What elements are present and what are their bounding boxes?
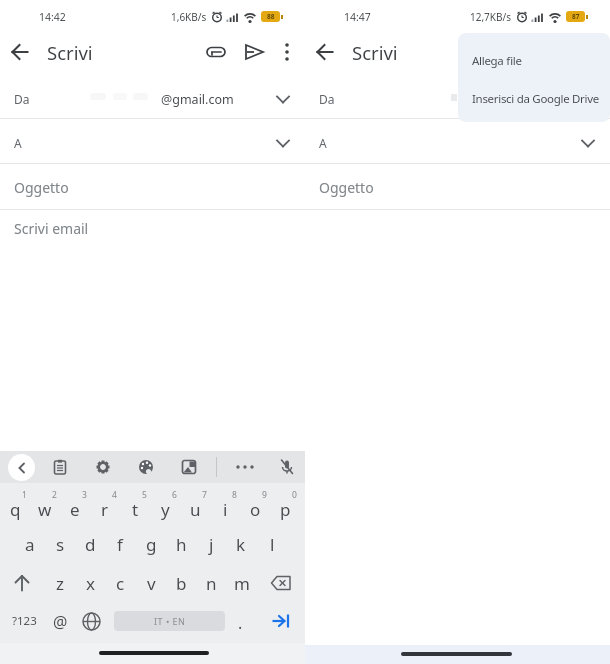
button[interactable]: ?123 xyxy=(10,602,38,640)
button[interactable]: d xyxy=(76,525,104,563)
button[interactable]: l xyxy=(258,525,286,563)
button[interactable] xyxy=(6,38,34,66)
staticText: ?123 xyxy=(12,613,37,629)
button[interactable]: r xyxy=(91,490,119,528)
button[interactable]: s xyxy=(46,525,74,563)
button[interactable] xyxy=(242,40,266,64)
button[interactable]: t xyxy=(121,490,149,528)
button[interactable]: a xyxy=(16,525,44,563)
staticText: . xyxy=(238,612,243,634)
staticText: Oggetto xyxy=(14,178,69,197)
button[interactable]: x xyxy=(76,564,104,602)
button[interactable] xyxy=(267,569,295,597)
staticText: t xyxy=(132,498,139,521)
button[interactable]: . xyxy=(226,604,254,642)
button[interactable] xyxy=(46,453,74,481)
button[interactable] xyxy=(132,453,160,481)
button[interactable] xyxy=(89,453,117,481)
staticText: j xyxy=(209,533,214,556)
button[interactable]: n xyxy=(197,564,225,602)
button[interactable]: f xyxy=(106,525,134,563)
staticText: Da xyxy=(319,91,335,107)
button[interactable]: u xyxy=(181,490,209,528)
staticText: q xyxy=(10,498,21,521)
staticText: 0 xyxy=(292,489,297,501)
button[interactable] xyxy=(175,453,203,481)
button[interactable] xyxy=(458,77,610,122)
button[interactable] xyxy=(0,210,305,246)
button[interactable] xyxy=(273,453,301,481)
staticText: o xyxy=(250,498,261,521)
staticText: 8 xyxy=(232,489,237,501)
staticText: @ xyxy=(53,611,68,633)
staticText: r xyxy=(101,498,109,521)
staticText: 9 xyxy=(262,489,267,501)
staticText: @gmail.com xyxy=(161,91,234,108)
staticText: s xyxy=(56,533,65,556)
button[interactable]: i xyxy=(211,490,239,528)
button[interactable]: z xyxy=(46,564,74,602)
button[interactable] xyxy=(0,164,305,209)
staticText: A xyxy=(319,135,327,151)
staticText: A xyxy=(14,135,22,151)
staticText: 2 xyxy=(52,489,57,501)
staticText: 3 xyxy=(82,489,87,501)
button[interactable]: @ xyxy=(46,603,74,641)
button[interactable]: e xyxy=(61,490,89,528)
staticText: d xyxy=(85,533,96,556)
button[interactable]: g xyxy=(137,525,165,563)
staticText: 6 xyxy=(172,489,177,501)
staticText: c xyxy=(116,572,125,595)
staticText: 4 xyxy=(112,489,117,501)
staticText: k xyxy=(236,533,246,556)
staticText: y xyxy=(161,498,170,521)
staticText: Scrivi xyxy=(47,40,93,65)
staticText: Inserisci da Google Drive xyxy=(472,91,599,107)
button[interactable] xyxy=(8,454,35,481)
staticText: i xyxy=(223,498,228,521)
button[interactable]: p xyxy=(271,490,299,528)
staticText: v xyxy=(147,572,156,595)
button[interactable]: o xyxy=(241,490,269,528)
button[interactable] xyxy=(77,607,105,635)
button[interactable] xyxy=(305,164,610,209)
staticText: x xyxy=(86,572,95,595)
staticText: Scrivi xyxy=(352,40,398,65)
staticText: 87 xyxy=(572,12,580,21)
staticText: 88 xyxy=(267,12,275,21)
button[interactable]: IT • EN xyxy=(114,611,225,631)
button[interactable]: y xyxy=(151,490,179,528)
button[interactable]: q xyxy=(1,490,29,528)
button[interactable]: m xyxy=(228,564,256,602)
button[interactable] xyxy=(305,119,610,163)
button[interactable]: v xyxy=(137,564,165,602)
staticText: Oggetto xyxy=(319,178,374,197)
button[interactable] xyxy=(0,119,305,163)
staticText: n xyxy=(206,572,217,595)
staticText: 7 xyxy=(202,489,207,501)
staticText: 1,6KB/s xyxy=(171,10,207,24)
button[interactable] xyxy=(305,81,610,118)
button[interactable] xyxy=(267,607,295,635)
button[interactable] xyxy=(277,40,297,64)
button[interactable] xyxy=(0,81,305,118)
staticText: IT • EN xyxy=(154,615,186,627)
staticText: z xyxy=(56,572,64,595)
staticText: m xyxy=(234,572,250,595)
button[interactable]: c xyxy=(106,564,134,602)
staticText: 5 xyxy=(142,489,147,501)
button[interactable] xyxy=(231,453,259,481)
button[interactable]: k xyxy=(227,525,255,563)
staticText: f xyxy=(117,533,123,556)
button[interactable]: j xyxy=(197,525,225,563)
staticText: 12,7KB/s xyxy=(470,10,512,24)
button[interactable] xyxy=(8,569,36,597)
button[interactable] xyxy=(458,33,610,77)
staticText: g xyxy=(146,533,157,556)
staticText: h xyxy=(176,533,187,556)
button[interactable] xyxy=(311,38,339,66)
button[interactable] xyxy=(204,40,228,64)
button[interactable]: h xyxy=(167,525,195,563)
button[interactable]: w xyxy=(31,490,59,528)
button[interactable]: b xyxy=(167,564,195,602)
